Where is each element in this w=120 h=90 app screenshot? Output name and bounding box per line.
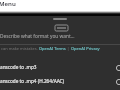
button[interactable]: Format [55,25,68,31]
staticText: can make mistakes. [1,46,39,51]
button[interactable]: anscode to .mp3 [0,60,120,73]
staticText: | [66,46,71,51]
staticText: Describe what format you want... [0,33,75,40]
other: Use suggestion [112,77,120,85]
staticText: anscode to .mp4 (H.264/AAC) [0,78,112,84]
staticText: Menu [0,0,16,8]
other: Use suggestion [112,63,120,71]
button[interactable]: Menu [0,0,16,8]
staticText: anscode to .mp3 [0,64,112,70]
button[interactable]: anscode to .mp4 (H.264/AAC) [0,74,120,87]
button[interactable]: OpenAI Terms [39,46,66,51]
button[interactable]: OpenAI Privacy [71,46,100,51]
